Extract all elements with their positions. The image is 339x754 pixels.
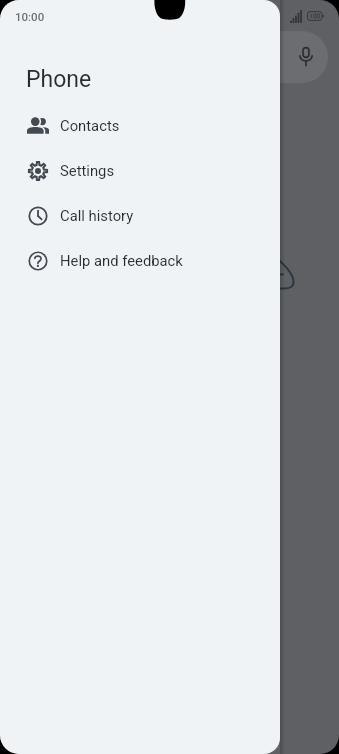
staticText: Contacts	[60, 117, 120, 134]
staticText: Phone	[26, 66, 92, 93]
button[interactable]: Call history	[0, 193, 280, 238]
button[interactable]: Contacts	[0, 103, 280, 148]
staticText: Help and feedback	[60, 252, 183, 269]
button[interactable]: Help and feedback	[0, 238, 280, 283]
staticText: Settings	[60, 162, 115, 179]
button[interactable]: Settings	[0, 148, 280, 193]
staticText: 10:00	[15, 10, 45, 23]
staticText: Call history	[60, 207, 134, 224]
button[interactable]: Voice search	[258, 31, 328, 83]
